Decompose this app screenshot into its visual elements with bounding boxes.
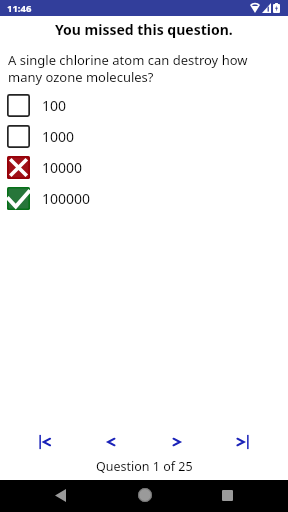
staticText: You missed this question. [55, 20, 233, 39]
button[interactable]: 100 [0, 90, 288, 121]
staticText: 100000 [42, 189, 91, 208]
staticText: 10000 [42, 158, 83, 177]
button[interactable]: 10000 [0, 152, 288, 183]
staticText: 100 [42, 96, 67, 115]
button[interactable]: Next question [144, 425, 210, 453]
button[interactable]: Back [45, 480, 75, 510]
staticText: A single chlorine atom can destroy how m… [8, 51, 258, 86]
button[interactable]: Recent apps [212, 480, 242, 510]
staticText: 11:46 [7, 2, 32, 15]
staticText: Question 1 of 25 [96, 458, 193, 475]
button[interactable]: Home [130, 480, 160, 510]
button[interactable]: 1000 [0, 121, 288, 152]
button[interactable]: Last question [210, 425, 276, 453]
button[interactable]: Previous question [78, 425, 144, 453]
button[interactable]: First question [12, 425, 78, 453]
staticText: 1000 [42, 127, 75, 146]
button[interactable]: 100000 [0, 183, 288, 214]
